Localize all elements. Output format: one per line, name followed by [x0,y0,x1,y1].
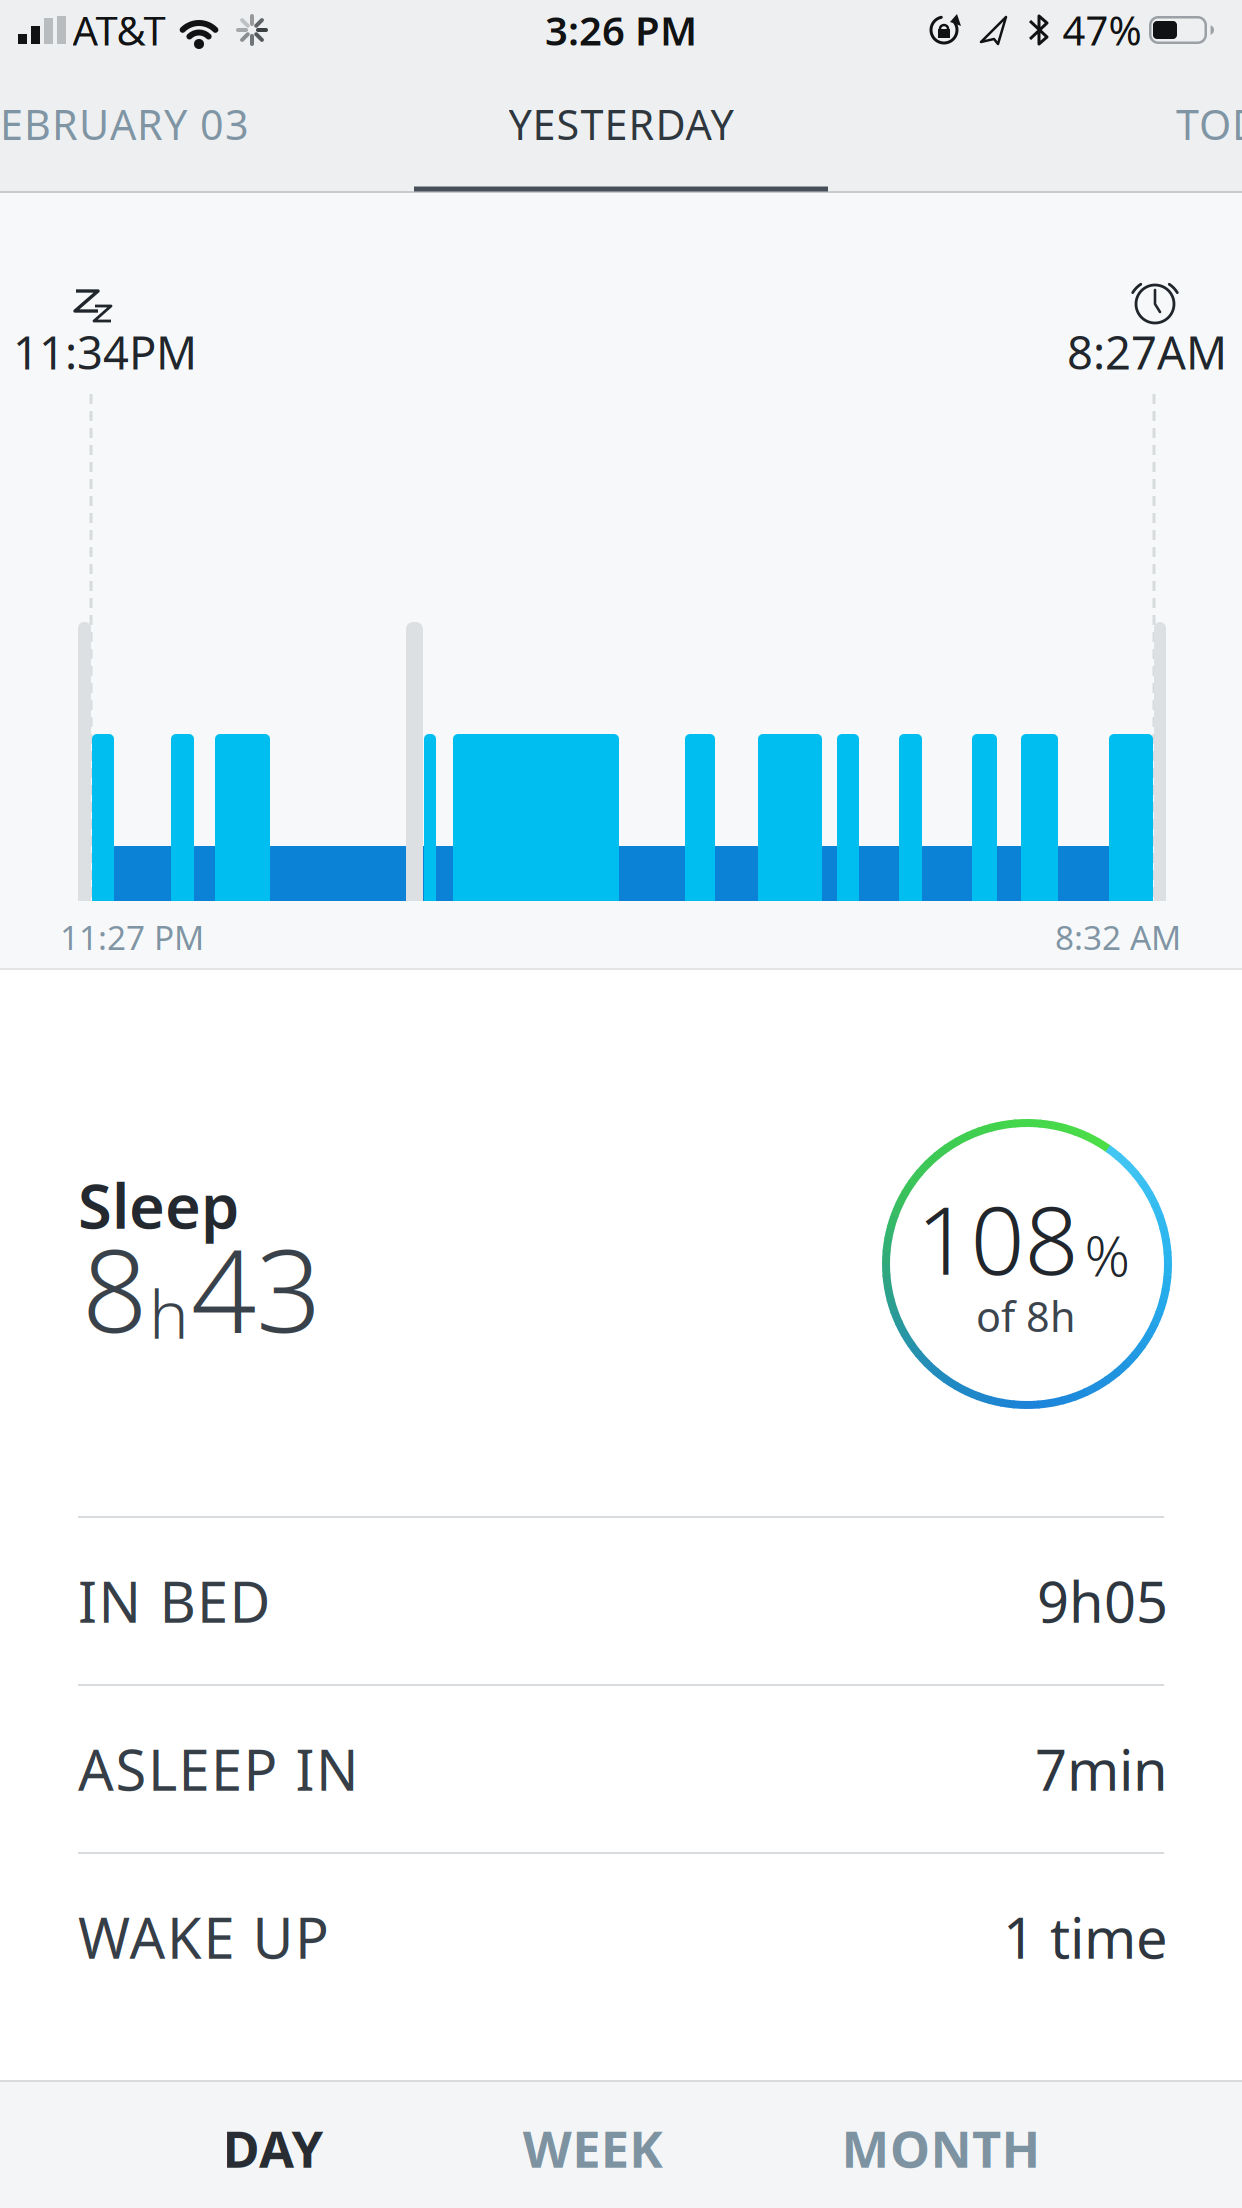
staticText: % [1084,1217,1129,1292]
staticText: 8:32 AM [1055,915,1181,959]
staticText: ASLEEP IN [78,1732,359,1806]
staticText: WAKE UP [78,1900,329,1974]
staticText: 9h05 [1037,1564,1168,1638]
button[interactable]: YESTERDAY [0,0,1242,2208]
staticText: YESTERDAY [508,97,733,151]
button[interactable]: TODAY [0,0,1242,2208]
staticText: FEBRUARY 03 [0,97,249,151]
button[interactable]: WEEK [0,0,1242,2208]
staticText: 8 [82,1212,147,1364]
staticText: 8:27AM [1067,322,1227,382]
staticText: 11:34PM [13,322,197,382]
staticText: 3:26 PM [545,3,697,56]
staticText: IN BED [78,1564,270,1638]
staticText: 7min [1035,1732,1168,1806]
staticText: h [149,1269,189,1357]
staticText: DAY [222,2114,323,2182]
staticText: 1 time [1003,1900,1168,1974]
staticText: 108 [916,1175,1078,1301]
button[interactable]: FEBRUARY 03 [0,0,1242,2208]
staticText: AT&T [72,3,165,56]
staticText: MONTH [841,2114,1040,2182]
staticText: Sleep [78,1164,239,1246]
button[interactable]: MONTH [0,0,1242,2208]
staticText: 43 [191,1212,321,1364]
staticText: 47% [1062,3,1141,56]
button[interactable]: DAY [0,0,1242,2208]
staticText: WEEK [523,2114,663,2182]
staticText: 11:27 PM [60,915,204,959]
staticText: of 8h [976,1289,1076,1343]
staticText: TODAY [1176,97,1242,151]
